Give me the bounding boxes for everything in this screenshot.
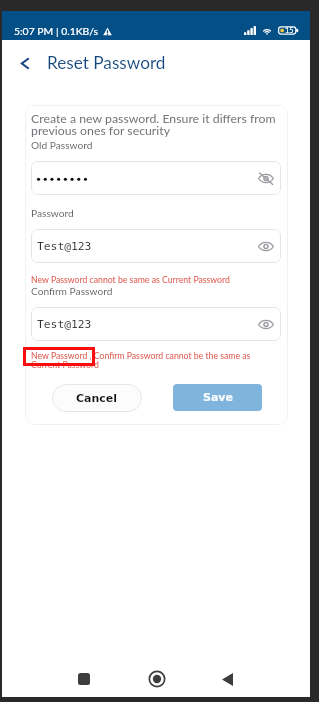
staticText: Test@123	[37, 240, 92, 253]
button[interactable]: Hide password	[257, 170, 274, 187]
staticText: Confirm Password	[31, 285, 113, 297]
button[interactable]: Hide password	[31, 161, 281, 195]
button[interactable]: Save	[173, 384, 262, 411]
button[interactable]: Test@123	[31, 307, 281, 341]
staticText: Create a new password. Ensure it differs…	[31, 111, 288, 138]
staticText: 5:07 PM | 0.1KB/s	[14, 25, 99, 37]
staticText: Save	[203, 391, 233, 404]
button[interactable]: Show password	[257, 316, 274, 333]
button[interactable]: Show password	[257, 238, 274, 255]
staticText: 15	[285, 26, 294, 35]
staticText: Password	[31, 207, 74, 219]
button[interactable]: Cancel	[52, 384, 142, 412]
button[interactable]: Back	[14, 52, 36, 74]
staticText: New Password , Confirm Password cannot b…	[31, 350, 281, 370]
staticText: Cancel	[76, 392, 118, 405]
button[interactable]: Back	[214, 666, 240, 692]
staticText: Reset Password	[47, 52, 166, 73]
button[interactable]: Recents	[71, 666, 97, 692]
staticText: Old Password	[31, 139, 93, 151]
staticText: Test@123	[37, 318, 92, 331]
staticText: New Password cannot be same as Current P…	[31, 274, 230, 284]
button[interactable]: Test@123	[31, 229, 281, 263]
button[interactable]: Home	[144, 666, 170, 692]
